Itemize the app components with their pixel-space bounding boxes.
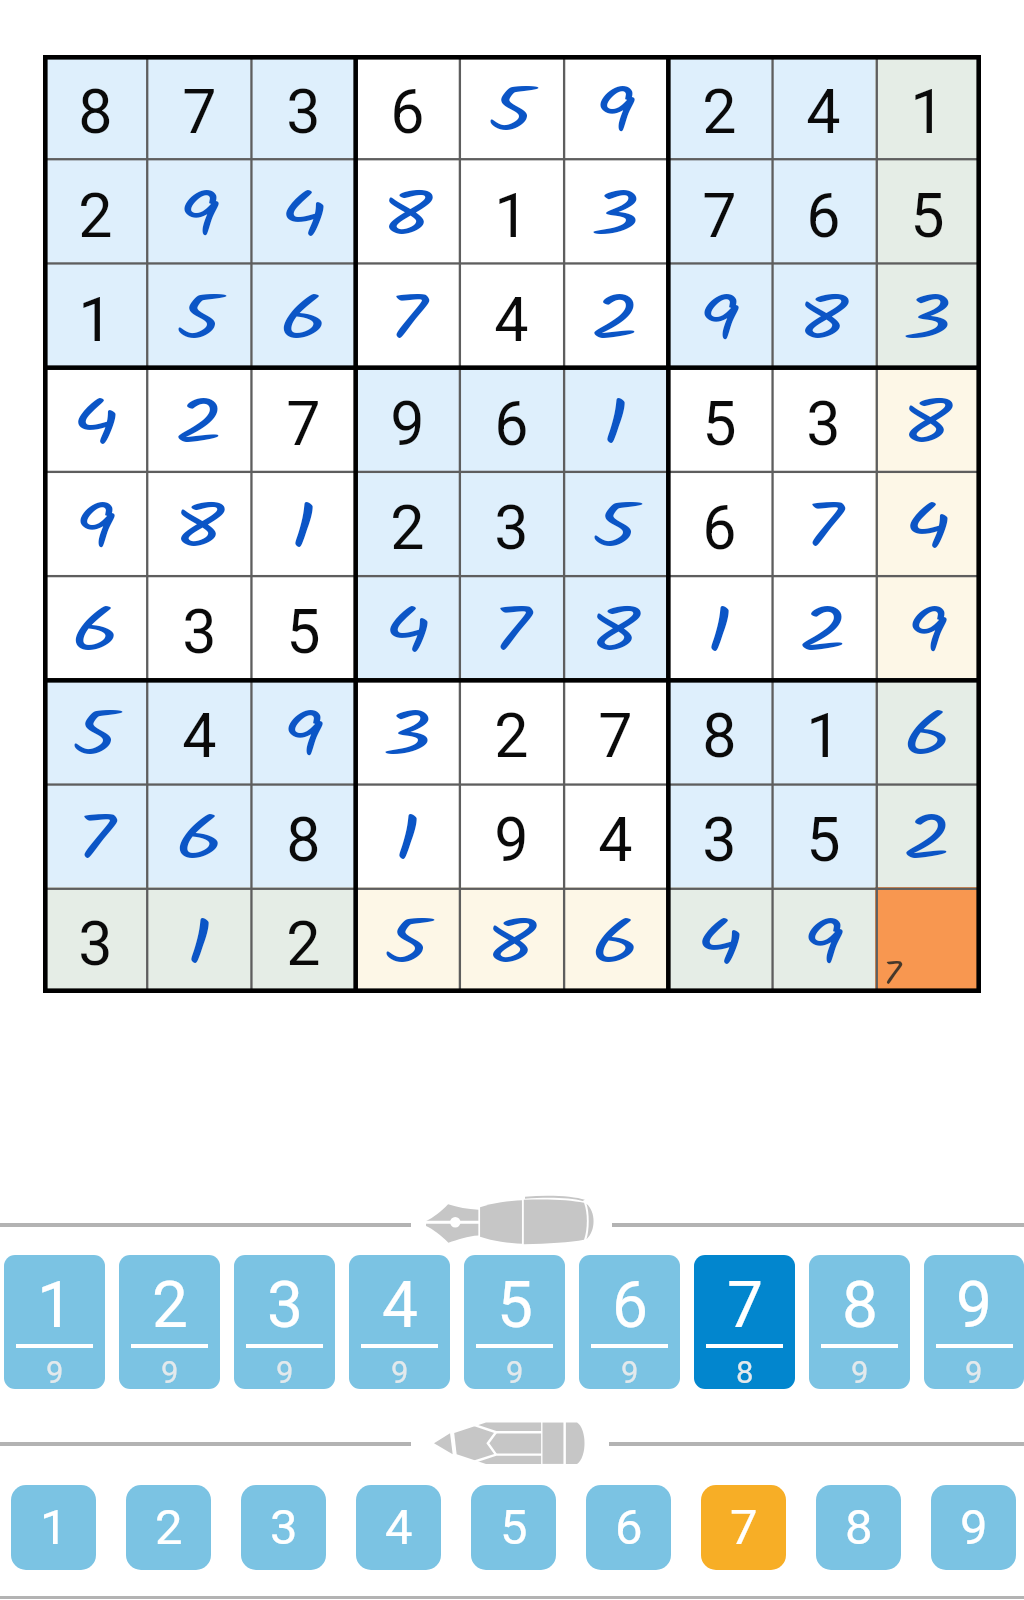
button[interactable]: 7 xyxy=(251,367,355,471)
button[interactable]: 6 xyxy=(43,575,147,679)
button[interactable]: 7 xyxy=(875,887,979,991)
button[interactable]: 5 xyxy=(563,471,667,575)
button[interactable]: 1 xyxy=(251,471,355,575)
button[interactable]: 5 xyxy=(771,783,875,887)
button[interactable]: 2 xyxy=(147,367,251,471)
button[interactable]: 8 xyxy=(43,55,147,159)
button[interactable]: 5 xyxy=(875,159,979,263)
button[interactable]: 7 xyxy=(459,575,563,679)
button[interactable]: 6 xyxy=(586,1485,671,1570)
button[interactable]: 2 xyxy=(119,1255,220,1389)
button[interactable]: 9 xyxy=(931,1485,1016,1570)
button[interactable]: 2 xyxy=(355,471,459,575)
button[interactable]: 1 xyxy=(563,367,667,471)
button[interactable]: 3 xyxy=(355,679,459,783)
button[interactable]: 7 xyxy=(563,679,667,783)
button[interactable]: 1 xyxy=(147,887,251,991)
button[interactable]: 8 xyxy=(147,471,251,575)
button[interactable]: 4 xyxy=(875,471,979,575)
button[interactable]: 5 xyxy=(459,55,563,159)
button[interactable]: 7 xyxy=(701,1485,786,1570)
button[interactable]: 5 xyxy=(471,1485,556,1570)
button[interactable]: 5 xyxy=(667,367,771,471)
button[interactable]: 4 xyxy=(349,1255,450,1389)
button[interactable]: 2 xyxy=(875,783,979,887)
button[interactable]: 6 xyxy=(771,159,875,263)
button[interactable]: 1 xyxy=(771,679,875,783)
button[interactable]: 4 xyxy=(355,575,459,679)
button[interactable]: 1 xyxy=(4,1255,105,1389)
button[interactable]: 5 xyxy=(355,887,459,991)
button[interactable]: 2 xyxy=(771,575,875,679)
button[interactable]: 6 xyxy=(251,263,355,367)
button[interactable]: 3 xyxy=(147,575,251,679)
button[interactable]: 7 xyxy=(694,1255,795,1389)
button[interactable]: 4 xyxy=(771,55,875,159)
button[interactable]: 2 xyxy=(126,1485,211,1570)
button[interactable]: 9 xyxy=(667,263,771,367)
button[interactable]: 6 xyxy=(147,783,251,887)
button[interactable]: 2 xyxy=(43,159,147,263)
button[interactable]: 7 xyxy=(355,263,459,367)
button[interactable]: 9 xyxy=(251,679,355,783)
button[interactable]: 4 xyxy=(356,1485,441,1570)
button[interactable]: 8 xyxy=(667,679,771,783)
button[interactable]: Pen mode xyxy=(413,1182,611,1262)
button[interactable]: 5 xyxy=(43,679,147,783)
button[interactable]: 6 xyxy=(667,471,771,575)
button[interactable]: 1 xyxy=(667,575,771,679)
button[interactable]: 9 xyxy=(459,783,563,887)
button[interactable]: 3 xyxy=(459,471,563,575)
button[interactable]: 2 xyxy=(667,55,771,159)
button[interactable]: 4 xyxy=(563,783,667,887)
button[interactable]: 1 xyxy=(875,55,979,159)
button[interactable]: 9 xyxy=(563,55,667,159)
button[interactable]: 1 xyxy=(355,783,459,887)
button[interactable]: 8 xyxy=(809,1255,910,1389)
button[interactable]: 8 xyxy=(355,159,459,263)
button[interactable]: 6 xyxy=(355,55,459,159)
button[interactable]: 8 xyxy=(875,367,979,471)
button[interactable]: 3 xyxy=(563,159,667,263)
button[interactable]: 7 xyxy=(771,471,875,575)
button[interactable]: 4 xyxy=(667,887,771,991)
button[interactable]: 4 xyxy=(459,263,563,367)
button[interactable]: 7 xyxy=(43,783,147,887)
button[interactable]: 2 xyxy=(459,679,563,783)
button[interactable]: 4 xyxy=(147,679,251,783)
button[interactable]: 8 xyxy=(459,887,563,991)
button[interactable]: 3 xyxy=(667,783,771,887)
button[interactable]: 1 xyxy=(459,159,563,263)
button[interactable]: 9 xyxy=(355,367,459,471)
button[interactable]: 7 xyxy=(667,159,771,263)
button[interactable]: 6 xyxy=(579,1255,680,1389)
button[interactable]: 7 xyxy=(147,55,251,159)
button[interactable]: 8 xyxy=(816,1485,901,1570)
button[interactable]: 8 xyxy=(771,263,875,367)
button[interactable]: Pencil mode xyxy=(413,1408,611,1478)
button[interactable]: 5 xyxy=(147,263,251,367)
button[interactable]: 4 xyxy=(43,367,147,471)
button[interactable]: 6 xyxy=(459,367,563,471)
button[interactable]: 4 xyxy=(251,159,355,263)
button[interactable]: 8 xyxy=(563,575,667,679)
button[interactable]: 9 xyxy=(43,471,147,575)
button[interactable]: 8 xyxy=(251,783,355,887)
button[interactable]: 3 xyxy=(234,1255,335,1389)
button[interactable]: 6 xyxy=(563,887,667,991)
button[interactable]: 3 xyxy=(875,263,979,367)
button[interactable]: 9 xyxy=(924,1255,1024,1389)
button[interactable]: 1 xyxy=(43,263,147,367)
button[interactable]: 5 xyxy=(251,575,355,679)
button[interactable]: 3 xyxy=(43,887,147,991)
button[interactable]: 3 xyxy=(771,367,875,471)
button[interactable]: 3 xyxy=(241,1485,326,1570)
button[interactable]: 9 xyxy=(875,575,979,679)
button[interactable]: 2 xyxy=(563,263,667,367)
button[interactable]: 9 xyxy=(147,159,251,263)
button[interactable]: 6 xyxy=(875,679,979,783)
button[interactable]: 1 xyxy=(11,1485,96,1570)
button[interactable]: 3 xyxy=(251,55,355,159)
button[interactable]: 2 xyxy=(251,887,355,991)
button[interactable]: 9 xyxy=(771,887,875,991)
